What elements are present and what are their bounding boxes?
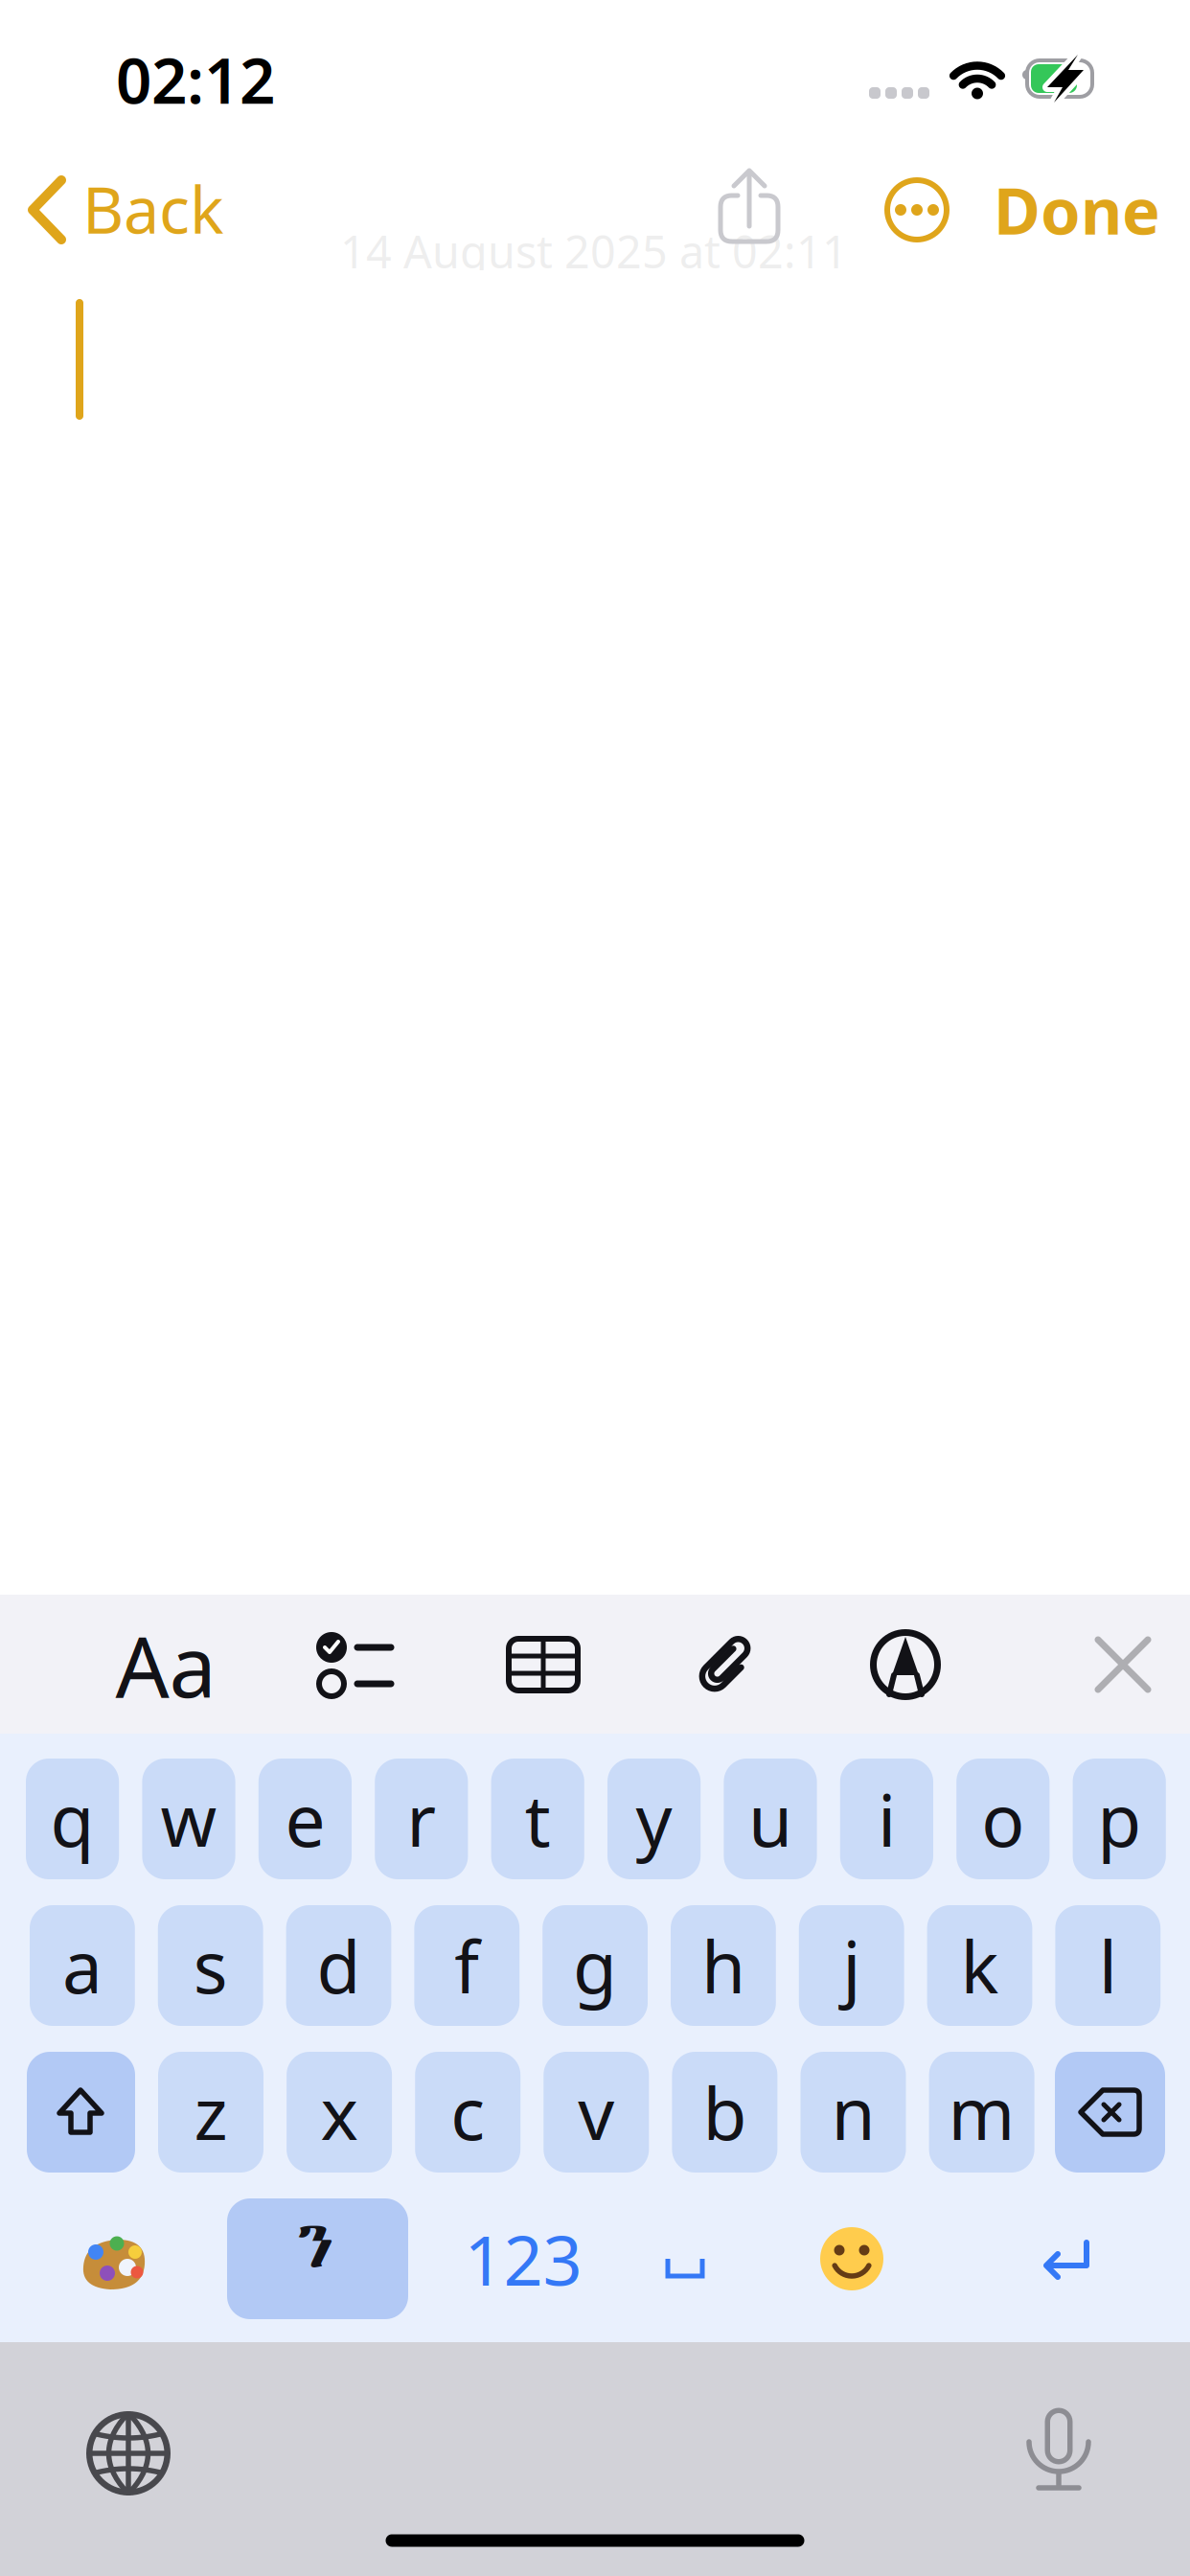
- staticText: t: [525, 1771, 551, 1866]
- staticText: w: [160, 1771, 217, 1866]
- staticText: d: [317, 1918, 361, 2013]
- staticText: p: [1097, 1771, 1141, 1866]
- staticText: Aa: [115, 1609, 216, 1721]
- staticText: k: [961, 1918, 999, 2013]
- staticText: 02:12: [116, 38, 275, 121]
- staticText: Back: [82, 166, 224, 251]
- staticText: h: [701, 1918, 745, 2013]
- staticText: j: [842, 1918, 861, 2013]
- staticText: b: [703, 2065, 747, 2160]
- staticText: l: [1099, 1918, 1117, 2013]
- staticText: x: [321, 2065, 358, 2160]
- staticText: 14 August 2025 at 02:11: [340, 221, 848, 281]
- staticText: e: [285, 1771, 325, 1866]
- staticText: z: [194, 2065, 228, 2160]
- staticText: a: [62, 1918, 102, 2013]
- staticText: n: [831, 2065, 875, 2160]
- staticText: u: [748, 1771, 792, 1866]
- staticText: v: [578, 2065, 614, 2160]
- staticText: s: [193, 1918, 228, 2013]
- staticText: f: [454, 1918, 479, 2013]
- staticText: g: [573, 1918, 617, 2013]
- staticText: q: [50, 1771, 94, 1866]
- staticText: ን: [297, 2201, 333, 2289]
- staticText: m: [948, 2065, 1015, 2160]
- staticText: i: [878, 1771, 896, 1866]
- staticText: Done: [994, 167, 1160, 252]
- staticText: y: [636, 1771, 672, 1866]
- staticText: 123: [464, 2213, 582, 2305]
- staticText: r: [407, 1771, 436, 1866]
- staticText: c: [451, 2065, 485, 2160]
- staticText: o: [981, 1771, 1025, 1866]
